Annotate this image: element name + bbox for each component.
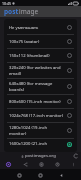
staticText: 640x480 (for message boards) bbox=[9, 81, 65, 92]
button[interactable]: postimages.org bbox=[0, 152, 81, 160]
button[interactable]: 100x75 (avatar) bbox=[7, 35, 74, 48]
staticText: 320x240 (for websites and email) bbox=[9, 65, 65, 76]
button[interactable]: More options bbox=[65, 160, 81, 169]
button[interactable]: Share bbox=[17, 160, 33, 169]
button[interactable]: History bbox=[49, 160, 65, 169]
staticText: 150x112 (thumbnail) bbox=[9, 53, 65, 59]
staticText: 100x75 (avatar) bbox=[9, 39, 65, 45]
button[interactable]: Recent apps bbox=[15, 171, 23, 179]
button[interactable]: Downloads bbox=[33, 160, 49, 169]
button[interactable]: Back bbox=[57, 171, 65, 179]
other: Reload bbox=[74, 154, 78, 158]
button[interactable]: Home bbox=[36, 171, 44, 179]
staticText: 800x600 (15-inch monitor) bbox=[9, 99, 65, 105]
button[interactable]: Не уменьшать bbox=[7, 21, 74, 34]
staticText: post bbox=[4, 7, 19, 16]
button[interactable]: 1600x1200 (21-inch monitor) bbox=[7, 139, 74, 150]
button[interactable]: 320x240 (for websites and email) bbox=[7, 63, 74, 78]
staticText: 10:45 bbox=[2, 1, 11, 6]
button[interactable]: 1280x1024 (19-inch monitor) bbox=[7, 123, 74, 138]
button[interactable]: 150x112 (thumbnail) bbox=[7, 49, 74, 62]
staticText: image bbox=[19, 7, 39, 16]
button[interactable]: 800x600 (15-inch monitor) bbox=[7, 95, 74, 108]
button[interactable]: 640x480 (for message boards) bbox=[7, 79, 74, 94]
staticText: 1024x768 (17-inch monitor) bbox=[9, 113, 65, 119]
staticText: Не уменьшать bbox=[9, 25, 65, 31]
staticText: 1600x1200 (21-inch monitor) bbox=[9, 141, 65, 148]
button[interactable]: Firefox home bbox=[0, 160, 17, 169]
button[interactable]: 1024x768 (17-inch monitor) bbox=[7, 109, 74, 122]
staticText: 1280x1024 (19-inch monitor) bbox=[9, 125, 65, 136]
staticText: postimages.org bbox=[25, 153, 56, 159]
